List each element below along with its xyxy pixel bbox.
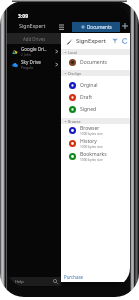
- staticText: 2 John: [21, 52, 31, 57]
- staticText: Local: [68, 50, 77, 55]
- staticText: 3:09: [18, 13, 28, 20]
- button[interactable]: Filter: [111, 37, 119, 45]
- staticText: Bookmarks: [80, 151, 107, 158]
- button[interactable]: History: [61, 137, 130, 150]
- button[interactable]: Menu: [56, 21, 67, 32]
- staticText: Help: [15, 279, 24, 284]
- staticText: Disclign: [68, 71, 82, 76]
- button[interactable]: Draft: [61, 91, 130, 103]
- button[interactable]: Add Drives: [7, 33, 61, 44]
- staticText: 1000 bytes size: [80, 158, 103, 162]
- button[interactable]: Signed: [61, 103, 130, 115]
- button[interactable]: Google Dri..: [7, 45, 61, 58]
- staticText: Google Dri..: [21, 46, 47, 52]
- staticText: Pingala: [21, 65, 33, 70]
- staticText: Orginal: [80, 82, 98, 89]
- staticText: Sky Drive: [21, 59, 41, 65]
- button[interactable]: Bookmarks: [61, 150, 130, 163]
- staticText: SignExpert: [19, 22, 46, 29]
- button[interactable]: Refresh: [121, 37, 129, 45]
- button[interactable]: Purchase: [61, 272, 130, 282]
- staticText: Documents: [80, 59, 107, 66]
- staticText: 1000 bytes size: [80, 145, 103, 149]
- button[interactable]: Add: [120, 21, 130, 31]
- staticText: SignExpert: [76, 37, 106, 45]
- staticText: Browse: [68, 119, 81, 124]
- staticText: 1000 bytes size: [80, 132, 103, 136]
- button[interactable]: Orginal: [61, 79, 130, 91]
- staticText: Documents: [87, 24, 112, 30]
- staticText: History: [80, 138, 97, 145]
- staticText: Draft: [80, 94, 92, 101]
- button[interactable]: Documents: [61, 55, 130, 70]
- button[interactable]: Browser: [61, 124, 130, 137]
- staticText: Add Drives: [23, 36, 46, 42]
- staticText: Browser: [80, 125, 100, 132]
- button[interactable]: Documents: [72, 22, 120, 32]
- button[interactable]: Search: [50, 277, 61, 286]
- button[interactable]: Sky Drive: [7, 58, 61, 71]
- staticText: Purchase: [64, 274, 83, 280]
- staticText: Signed: [80, 106, 97, 113]
- button[interactable]: Help: [7, 277, 31, 286]
